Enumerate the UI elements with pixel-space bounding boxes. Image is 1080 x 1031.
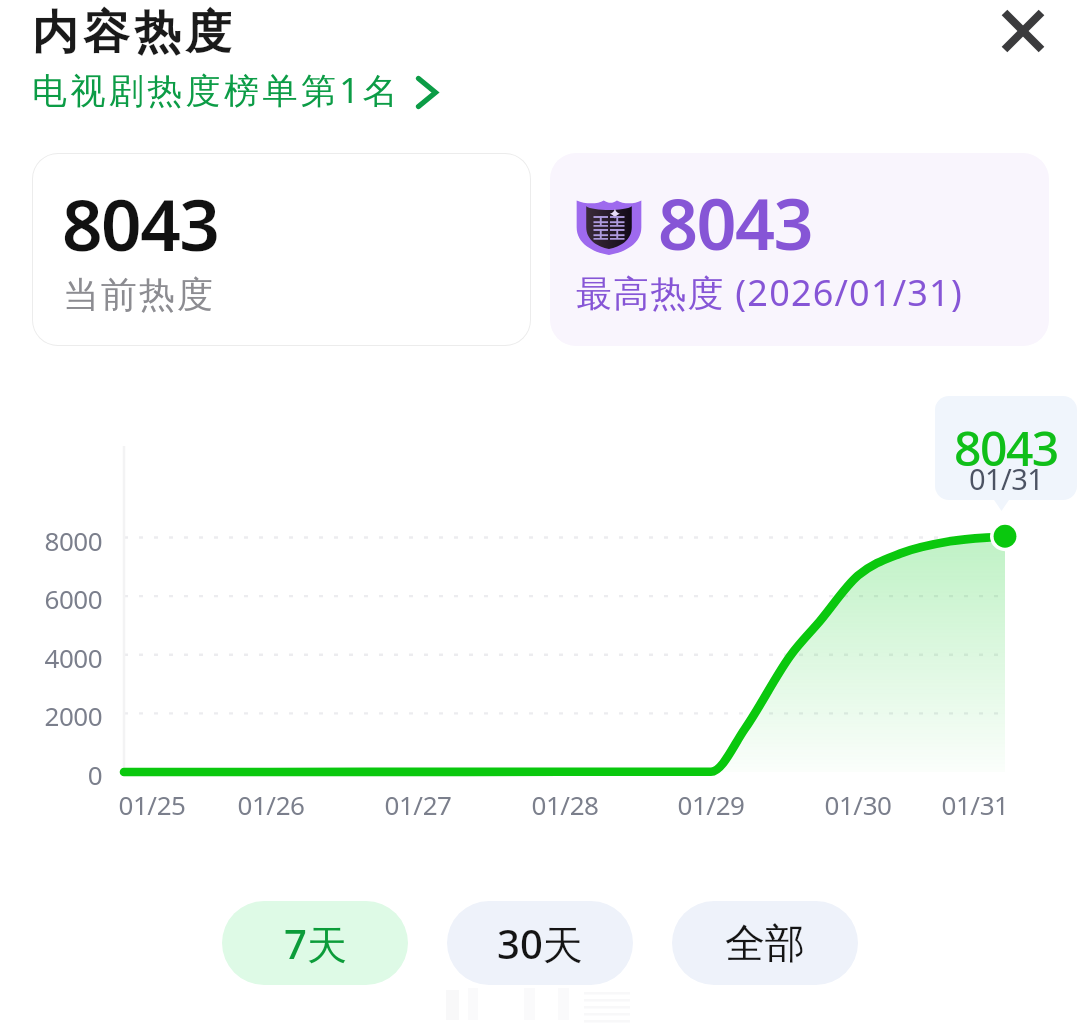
staticText: 01/26 [211,787,331,822]
staticText: 8000 [4,523,102,558]
button[interactable]: 电视剧热度榜单第1名 [32,66,439,114]
staticText: 电视剧热度榜单第1名 [32,66,402,114]
staticText: 01/30 [798,787,918,822]
staticText: 全部 [725,918,805,968]
button[interactable]: 全部 [672,901,858,985]
staticText: 01/31 [915,787,1035,822]
staticText: 30天 [497,916,583,971]
staticText: 内容热度 [32,4,237,62]
button[interactable]: 8043 [550,153,1049,346]
staticText: 4000 [4,640,102,675]
button[interactable]: 7天 [222,901,408,985]
staticText: 8043 [954,415,1058,480]
staticText: 0 [4,757,102,792]
button[interactable]: 8043 [935,396,1077,500]
button[interactable]: 30天 [447,901,633,985]
staticText: 当前热度 [62,272,214,317]
button[interactable]: Close [983,0,1063,71]
staticText: 01/29 [651,787,771,822]
staticText: 8043 [658,175,813,270]
staticText: 6000 [4,581,102,616]
staticText: 01/27 [358,787,478,822]
staticText: 01/31 [969,459,1044,498]
button[interactable]: 8043 [32,153,531,346]
staticText: 最高热度 (2026/01/31) [576,268,963,317]
staticText: 01/25 [92,787,212,822]
staticText: 01/28 [505,787,625,822]
staticText: 7天 [284,916,347,971]
staticText: 8043 [62,175,219,272]
staticText: 2000 [4,698,102,733]
